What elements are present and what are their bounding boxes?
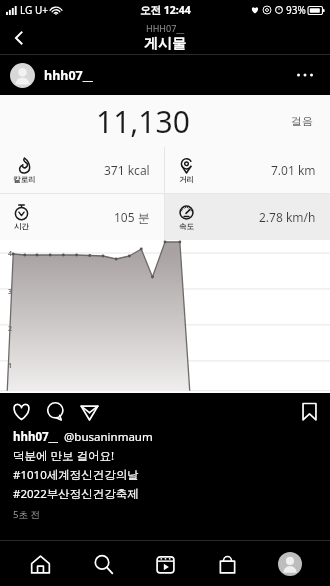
staticText: 5초 전 (13, 508, 40, 521)
staticText: HHH07__ (146, 22, 185, 34)
staticText: @busaninmaum (64, 429, 153, 445)
staticText: 오전 12:44 (140, 3, 191, 17)
button[interactable]: hhh07__ (44, 67, 93, 84)
button[interactable]: 거리 (165, 147, 330, 193)
staticText: 2.78 km/h (259, 209, 316, 225)
staticText: 1 (8, 361, 13, 371)
staticText: 7.01 km (271, 162, 316, 178)
button[interactable]: hhh07__ (13, 429, 153, 445)
staticText: #1010세계정신건강의날 (13, 467, 139, 483)
staticText: 거리 (179, 175, 194, 184)
button[interactable]: Profile picture (10, 63, 35, 88)
button[interactable]: Save (292, 394, 326, 428)
button[interactable]: 칼로리 (0, 147, 164, 193)
staticText: 3 (8, 287, 13, 297)
button[interactable]: Profile (268, 542, 312, 586)
staticText: 11,130 (96, 101, 190, 142)
button[interactable]: Reels (143, 542, 187, 586)
staticText: LG U+ (20, 3, 48, 17)
staticText: 시간 (14, 222, 29, 231)
button[interactable]: 속도 (165, 194, 330, 240)
button[interactable]: Share (72, 394, 106, 428)
staticText: 105 분 (114, 209, 150, 225)
staticText: 덕분에 만보 걸어요! (13, 448, 115, 464)
staticText: 371 kcal (104, 162, 150, 178)
button[interactable]: More options (286, 56, 324, 94)
staticText: hhh07__ (44, 67, 93, 84)
button[interactable]: Shop (205, 542, 249, 586)
button[interactable]: Comment (38, 394, 72, 428)
staticText: #2022부산정신건강축제 (13, 486, 139, 502)
staticText: 2 (8, 324, 13, 334)
button[interactable]: Back (0, 20, 38, 55)
button[interactable]: Like (4, 394, 38, 428)
staticText: 게시물 (144, 35, 186, 53)
staticText: 속도 (179, 222, 194, 231)
staticText: 걸음 (291, 114, 313, 128)
staticText: 93% (286, 3, 306, 17)
staticText: 칼로리 (13, 175, 36, 184)
staticText: hhh07__ (13, 429, 59, 445)
button[interactable]: 시간 (0, 194, 164, 240)
button[interactable]: Search (81, 542, 125, 586)
staticText: 4 (8, 249, 13, 259)
button[interactable]: Home (18, 542, 62, 586)
